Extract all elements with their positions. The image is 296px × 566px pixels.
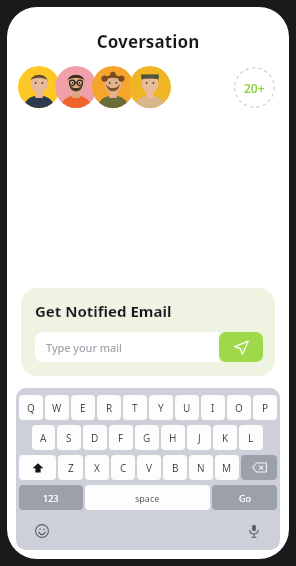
- staticText: Type your mail: [46, 340, 122, 355]
- button[interactable]: 20 plus participants: [234, 67, 275, 108]
- button[interactable]: 123: [19, 485, 83, 510]
- staticText: L: [248, 431, 254, 445]
- staticText: Get Notified Email: [35, 301, 172, 321]
- button[interactable]: Participant avatar: [55, 66, 97, 108]
- button[interactable]: S: [57, 425, 81, 450]
- button[interactable]: W: [45, 395, 69, 420]
- button[interactable]: J: [187, 425, 211, 450]
- button[interactable]: Go: [212, 485, 277, 510]
- button[interactable]: Z: [58, 455, 83, 480]
- button[interactable]: E: [71, 395, 95, 420]
- staticText: N: [197, 461, 205, 475]
- button[interactable]: T: [123, 395, 147, 420]
- button[interactable]: space: [85, 485, 210, 510]
- button[interactable]: O: [227, 395, 251, 420]
- staticText: R: [106, 401, 113, 415]
- staticText: M: [222, 461, 232, 475]
- staticText: Go: [239, 492, 251, 504]
- staticText: W: [52, 401, 62, 415]
- button[interactable]: C: [111, 455, 135, 480]
- staticText: Z: [68, 461, 74, 475]
- staticText: X: [94, 461, 100, 475]
- staticText: C: [120, 461, 127, 475]
- button[interactable]: R: [97, 395, 121, 420]
- button[interactable]: P: [253, 395, 277, 420]
- staticText: G: [143, 431, 151, 445]
- button[interactable]: G: [135, 425, 159, 450]
- button[interactable]: Y: [149, 395, 173, 420]
- staticText: F: [118, 431, 124, 445]
- button[interactable]: X: [85, 455, 109, 480]
- staticText: 123: [43, 492, 59, 504]
- staticText: B: [172, 461, 179, 475]
- staticText: Q: [27, 401, 35, 415]
- staticText: Coversation: [7, 30, 289, 53]
- staticText: E: [80, 401, 86, 415]
- button[interactable]: A: [32, 425, 55, 450]
- button[interactable]: Participant avatar: [18, 66, 60, 108]
- button[interactable]: Backspace: [241, 455, 277, 480]
- staticText: J: [198, 431, 201, 445]
- button[interactable]: Voice input: [243, 520, 265, 542]
- button[interactable]: Shift: [19, 455, 56, 480]
- button[interactable]: V: [137, 455, 161, 480]
- staticText: 20+: [244, 80, 265, 96]
- staticText: V: [146, 461, 152, 475]
- staticText: K: [222, 431, 229, 445]
- staticText: I: [211, 401, 215, 415]
- button[interactable]: H: [161, 425, 185, 450]
- button[interactable]: Participant avatar: [129, 66, 171, 108]
- button[interactable]: M: [215, 455, 239, 480]
- staticText: S: [66, 431, 72, 445]
- button[interactable]: Q: [19, 395, 43, 420]
- button[interactable]: Send: [219, 332, 263, 362]
- staticText: O: [235, 401, 243, 415]
- staticText: U: [183, 401, 191, 415]
- staticText: space: [135, 492, 160, 504]
- button[interactable]: L: [239, 425, 263, 450]
- button[interactable]: K: [213, 425, 237, 450]
- button[interactable]: Type your mail: [35, 332, 219, 362]
- button[interactable]: B: [163, 455, 187, 480]
- staticText: D: [91, 431, 99, 445]
- button[interactable]: D: [83, 425, 107, 450]
- button[interactable]: N: [189, 455, 213, 480]
- button[interactable]: F: [109, 425, 133, 450]
- button[interactable]: I: [201, 395, 225, 420]
- staticText: P: [262, 401, 269, 415]
- button[interactable]: Emoji: [31, 520, 53, 542]
- staticText: A: [40, 431, 47, 445]
- button[interactable]: U: [175, 395, 199, 420]
- button[interactable]: Participant avatar: [92, 66, 134, 108]
- staticText: T: [132, 401, 138, 415]
- staticText: Y: [158, 401, 164, 415]
- staticText: H: [169, 431, 177, 445]
